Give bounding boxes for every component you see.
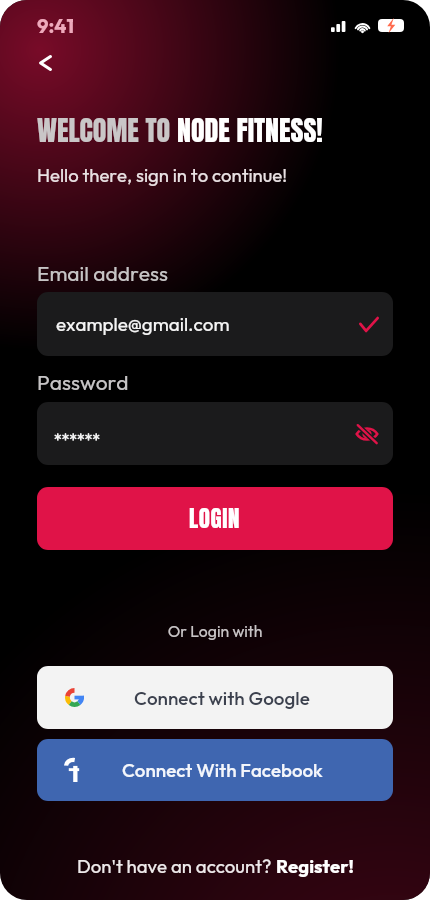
staticText: WELCOME TO bbox=[37, 109, 177, 151]
button[interactable]: Connect With Facebook bbox=[37, 739, 393, 801]
staticText: example@gmail.com bbox=[56, 312, 230, 336]
staticText: LOGIN bbox=[189, 501, 241, 536]
button[interactable]: Email address field bbox=[37, 292, 393, 356]
staticText: Register! bbox=[276, 854, 354, 877]
staticText: Or Login with bbox=[0, 621, 430, 641]
staticText: Connect With Facebook bbox=[122, 758, 323, 782]
button[interactable]: Register! bbox=[276, 854, 354, 877]
staticText: Connect with Google bbox=[134, 686, 310, 710]
staticText: Don't have an account? bbox=[77, 854, 276, 877]
staticText: Email address bbox=[37, 260, 168, 286]
staticText: 9:41 bbox=[37, 13, 74, 38]
button[interactable]: Back bbox=[28, 46, 62, 80]
button[interactable]: Connect with Google bbox=[37, 666, 393, 729]
staticText: Hello there, sign in to continue! bbox=[37, 163, 288, 186]
staticText: NODE FITNESS! bbox=[177, 109, 323, 151]
button[interactable]: Show password bbox=[353, 420, 381, 448]
staticText: Password bbox=[37, 369, 129, 395]
button[interactable]: LOGIN bbox=[37, 487, 393, 550]
button[interactable]: Password field bbox=[37, 402, 393, 465]
